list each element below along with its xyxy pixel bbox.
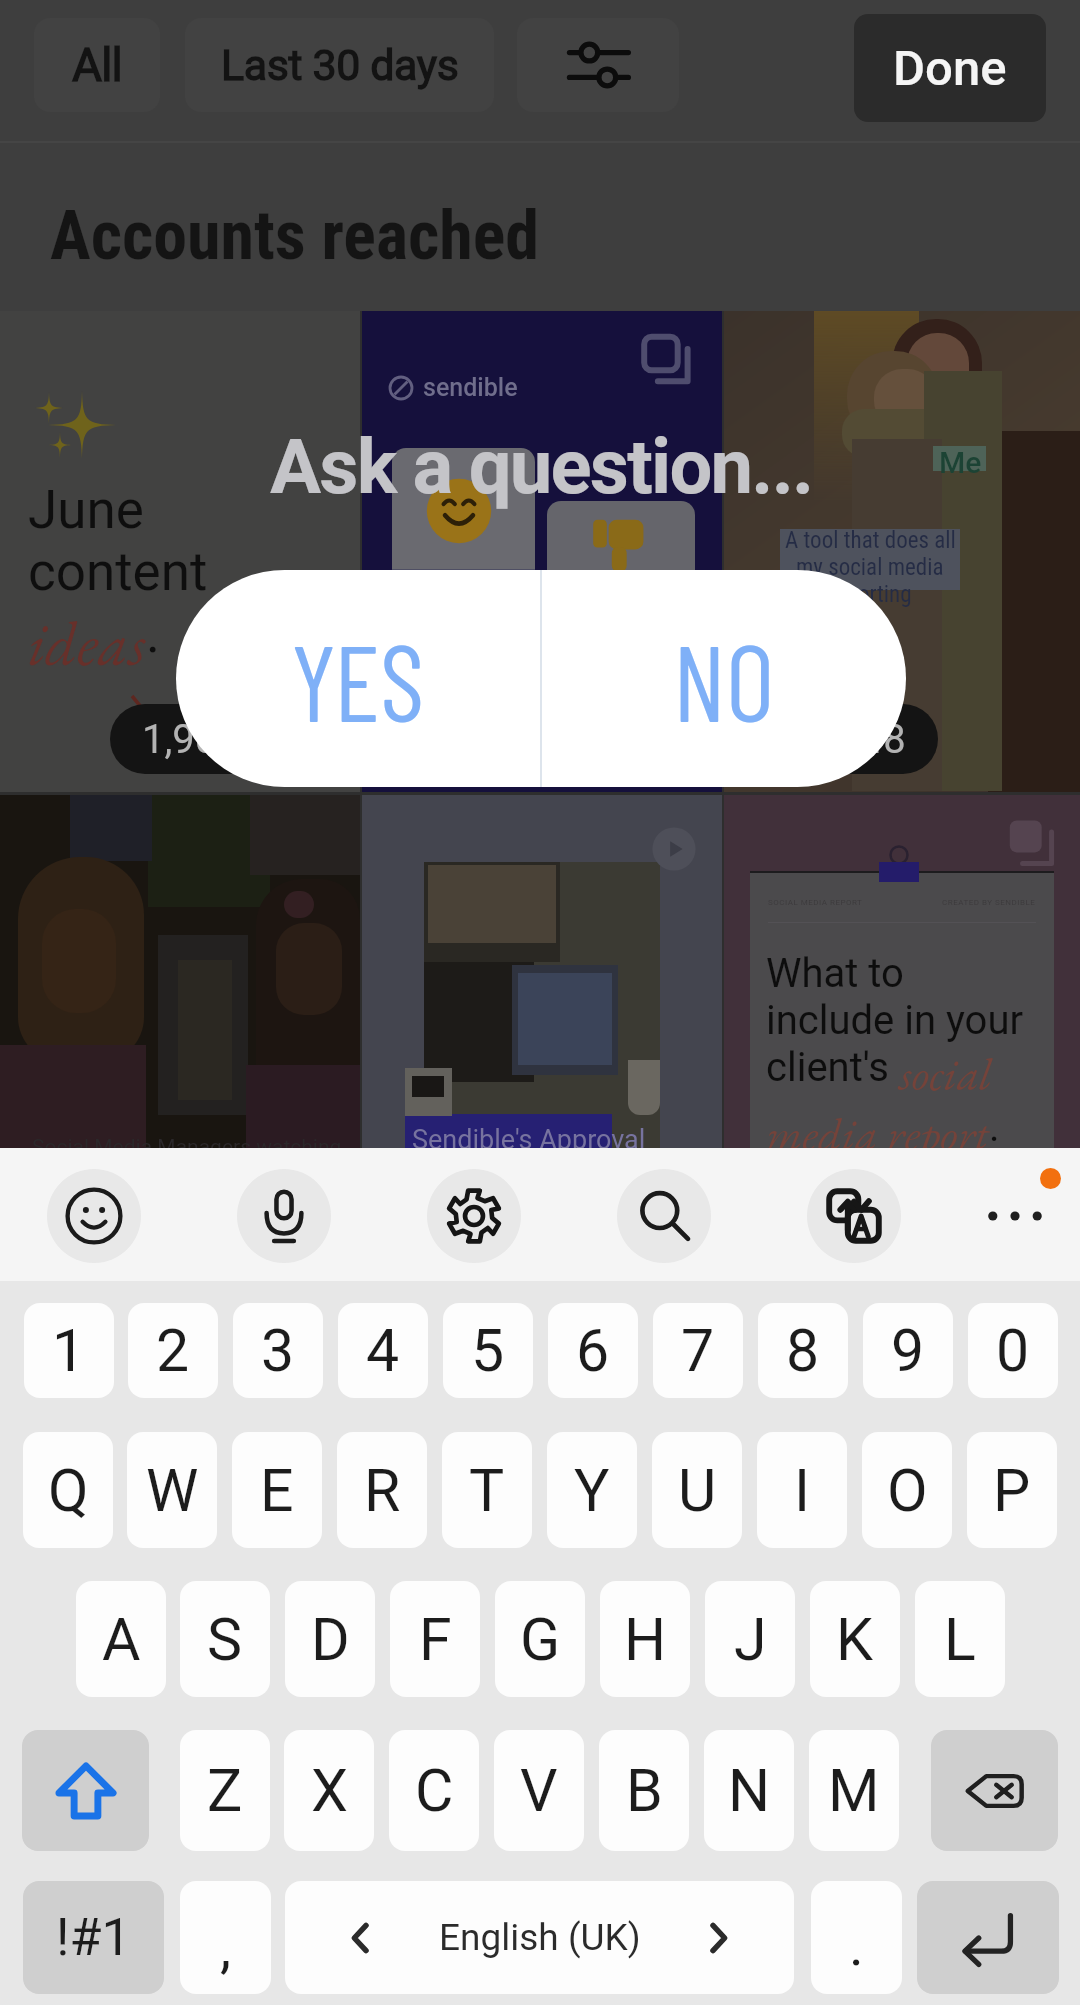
button[interactable]: R: [337, 1432, 427, 1548]
staticText: English (UK): [439, 1916, 641, 1959]
staticText: U: [678, 1456, 717, 1525]
button[interactable]: F: [390, 1581, 480, 1697]
staticText: 1,908: [142, 716, 240, 763]
button[interactable]: More options: [968, 1169, 1062, 1263]
button[interactable]: A: [76, 1581, 166, 1697]
button[interactable]: Space, English (UK): [285, 1881, 794, 1994]
staticText: 7: [681, 1316, 715, 1385]
staticText: YES: [291, 615, 425, 743]
staticText: Q: [48, 1456, 89, 1525]
button[interactable]: U: [652, 1432, 742, 1548]
staticText: A tool that does all: [785, 527, 956, 554]
button[interactable]: T: [442, 1432, 532, 1548]
staticText: M: [828, 1756, 880, 1825]
button[interactable]: Shift: [22, 1730, 149, 1851]
button[interactable]: 8: [758, 1303, 848, 1398]
button[interactable]: 7: [653, 1303, 743, 1398]
button[interactable]: P: [967, 1432, 1057, 1548]
staticText: K: [836, 1605, 874, 1674]
staticText: R: [364, 1456, 401, 1525]
button[interactable]: Settings: [427, 1169, 521, 1263]
staticText: Me: [939, 445, 982, 480]
button[interactable]: Emoji: [47, 1169, 141, 1263]
button[interactable]: All: [34, 18, 160, 112]
button[interactable]: 4: [338, 1303, 428, 1398]
button[interactable]: 1: [24, 1303, 114, 1398]
staticText: ideas: [28, 603, 146, 684]
button[interactable]: 6: [548, 1303, 638, 1398]
button[interactable]: C: [389, 1730, 479, 1851]
staticText: W: [146, 1456, 199, 1525]
button[interactable]: K: [810, 1581, 900, 1697]
button[interactable]: 9: [863, 1303, 953, 1398]
button[interactable]: NO: [542, 570, 906, 787]
button[interactable]: 5: [443, 1303, 533, 1398]
staticText: 3: [261, 1316, 295, 1385]
button[interactable]: Post: A tool that does all my social med…: [724, 311, 1080, 792]
button[interactable]: S: [180, 1581, 270, 1697]
staticText: X: [311, 1756, 348, 1825]
button[interactable]: Search: [617, 1169, 711, 1263]
staticText: reporting: [829, 581, 912, 608]
staticText: L: [944, 1605, 976, 1674]
button[interactable]: Post: Sendible quiz: [362, 311, 722, 792]
button[interactable]: Q: [23, 1432, 113, 1548]
button[interactable]: Z: [180, 1730, 270, 1851]
staticText: social: [899, 1044, 992, 1104]
button[interactable]: Voice input: [237, 1169, 331, 1263]
button[interactable]: V: [494, 1730, 584, 1851]
button[interactable]: B: [599, 1730, 689, 1851]
button[interactable]: Post: What to include in your client's s…: [724, 795, 1080, 1148]
button[interactable]: X: [284, 1730, 374, 1851]
staticText: 1: [52, 1316, 86, 1385]
staticText: 9: [891, 1316, 925, 1385]
button[interactable]: Done: [854, 14, 1046, 122]
button[interactable]: G: [495, 1581, 585, 1697]
staticText: 6: [576, 1316, 610, 1385]
button[interactable]: Y: [547, 1432, 637, 1548]
staticText: include in your: [766, 997, 1024, 1044]
button[interactable]: Post: Sendible's Approval: [362, 795, 722, 1148]
button[interactable]: Translate: [807, 1169, 901, 1263]
button[interactable]: Post: Social Media Managers watching me …: [0, 795, 360, 1148]
button[interactable]: O: [862, 1432, 952, 1548]
button[interactable]: I: [757, 1432, 847, 1548]
staticText: Done: [893, 40, 1007, 97]
staticText: J: [734, 1605, 767, 1674]
button[interactable]: 3: [233, 1303, 323, 1398]
staticText: B: [626, 1756, 663, 1825]
button[interactable]: Filters: [517, 18, 679, 112]
button[interactable]: L: [915, 1581, 1005, 1697]
staticText: H: [624, 1605, 667, 1674]
staticText: D: [311, 1605, 350, 1674]
staticText: 2,148: [808, 716, 906, 763]
button[interactable]: Enter: [917, 1881, 1059, 1994]
button[interactable]: D: [285, 1581, 375, 1697]
staticText: E: [260, 1456, 294, 1525]
button[interactable]: Last 30 days: [185, 18, 494, 112]
staticText: What to: [766, 950, 904, 997]
button[interactable]: !#1: [23, 1881, 164, 1994]
button[interactable]: YES: [176, 570, 540, 787]
button[interactable]: M: [809, 1730, 899, 1851]
staticText: .: [146, 603, 160, 665]
button[interactable]: ,: [180, 1881, 271, 1994]
button[interactable]: Post: June content ideas, 1,908 accounts…: [0, 311, 360, 792]
button[interactable]: W: [127, 1432, 217, 1548]
staticText: .: [849, 1913, 864, 1979]
staticText: 5: [471, 1316, 505, 1385]
staticText: 8: [786, 1316, 820, 1385]
button[interactable]: .: [811, 1881, 902, 1994]
staticText: N: [728, 1756, 771, 1825]
button[interactable]: Backspace: [931, 1730, 1058, 1851]
button[interactable]: H: [600, 1581, 690, 1697]
staticText: P: [993, 1456, 1031, 1525]
button[interactable]: J: [705, 1581, 795, 1697]
staticText: 0: [996, 1316, 1030, 1385]
staticText: Sendible's Approval: [412, 1124, 646, 1156]
button[interactable]: N: [704, 1730, 794, 1851]
button[interactable]: E: [232, 1432, 322, 1548]
button[interactable]: 2: [128, 1303, 218, 1398]
button[interactable]: 0: [968, 1303, 1058, 1398]
